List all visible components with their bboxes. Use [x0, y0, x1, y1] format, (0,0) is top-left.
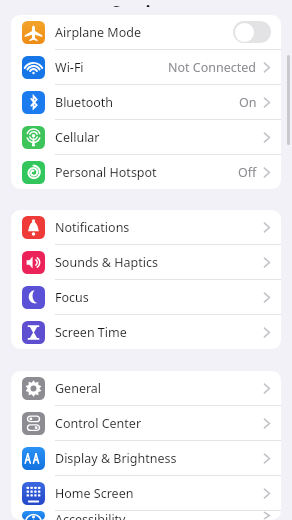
- button[interactable]: Home Screen: [11, 476, 281, 510]
- other: Open: [263, 256, 271, 269]
- other: Open: [263, 487, 271, 500]
- staticText: General: [55, 380, 102, 397]
- staticText: Wi-Fi: [55, 59, 84, 76]
- other: Open: [263, 131, 271, 144]
- staticText: On: [239, 94, 257, 111]
- button[interactable]: Cellular: [11, 120, 281, 154]
- staticText: Personal Hotspot: [55, 164, 157, 181]
- button[interactable]: Wi-Fi: [11, 50, 281, 84]
- button[interactable]: Focus: [11, 280, 281, 314]
- button[interactable]: Airplane Mode toggle: [233, 21, 271, 43]
- other: Open: [263, 452, 271, 465]
- staticText: Control Center: [55, 415, 142, 432]
- staticText: Airplane Mode: [55, 24, 141, 41]
- staticText: Sounds & Haptics: [55, 254, 158, 271]
- other: Open: [263, 326, 271, 339]
- staticText: Focus: [55, 289, 89, 306]
- button[interactable]: Control Center: [11, 406, 281, 440]
- other: Open: [263, 166, 271, 179]
- other: Open: [263, 221, 271, 234]
- other: Open: [263, 511, 271, 520]
- staticText: Home Screen: [55, 485, 134, 502]
- other: Open: [263, 291, 271, 304]
- staticText: Bluetooth: [55, 94, 114, 111]
- staticText: Not Connected: [168, 59, 257, 76]
- staticText: Screen Time: [55, 324, 127, 341]
- staticText: Cellular: [55, 129, 100, 146]
- button[interactable]: Personal Hotspot: [11, 155, 281, 189]
- button[interactable]: Airplane Mode: [11, 15, 281, 49]
- staticText: Notifications: [55, 219, 130, 236]
- button[interactable]: Accessibility: [11, 511, 281, 520]
- button[interactable]: Sounds & Haptics: [11, 245, 281, 279]
- staticText: Display & Brightness: [55, 450, 177, 467]
- button[interactable]: Notifications: [11, 210, 281, 244]
- other: Open: [263, 96, 271, 109]
- button[interactable]: Bluetooth: [11, 85, 281, 119]
- other: Open: [263, 61, 271, 74]
- button[interactable]: Display & Brightness: [11, 441, 281, 475]
- other: Open: [263, 382, 271, 395]
- staticText: Off: [238, 164, 257, 181]
- other: Open: [263, 417, 271, 430]
- button[interactable]: General: [11, 371, 281, 405]
- staticText: Settings: [111, 1, 181, 7]
- button[interactable]: Screen Time: [11, 315, 281, 349]
- staticText: Accessibility: [55, 511, 126, 520]
